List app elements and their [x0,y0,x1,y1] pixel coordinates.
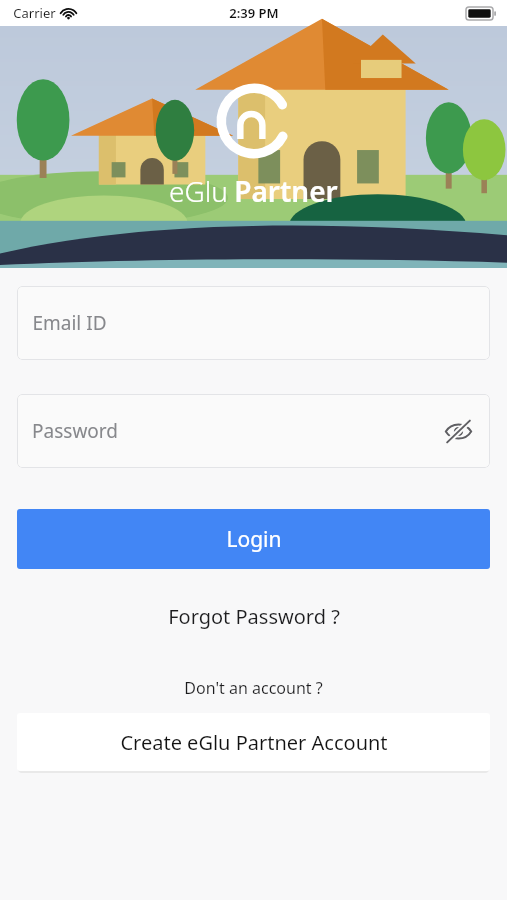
staticText: Login [226,525,282,554]
staticText: Email ID [32,310,107,336]
button[interactable]: Password [17,394,490,468]
button[interactable]: Create eGlu Partner Account [17,713,490,771]
staticText: 2:39 PM [229,4,279,22]
button[interactable]: Email ID [17,286,490,360]
staticText: Password [32,418,118,444]
staticText: Forgot Password ? [168,603,340,630]
staticText: Don't an account ? [184,677,323,699]
staticText: eGlu [169,172,228,210]
staticText: Partner [234,172,338,210]
staticText: Create eGlu Partner Account [120,729,388,756]
button[interactable]: Show password [441,414,475,448]
staticText: Carrier [13,4,56,22]
button[interactable]: Login [17,509,490,569]
button[interactable]: Forgot Password ? [17,598,490,634]
